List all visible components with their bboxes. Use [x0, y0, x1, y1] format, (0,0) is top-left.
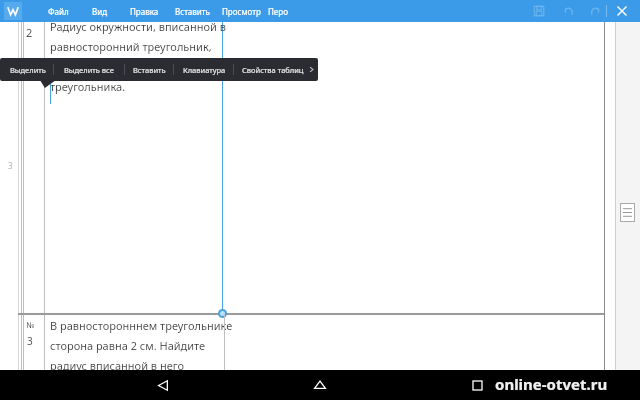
- button[interactable]: App menu: [4, 2, 22, 20]
- staticText: Вид: [92, 6, 108, 17]
- staticText: online-otvet.ru: [495, 374, 608, 394]
- button[interactable]: Выделить: [4, 58, 52, 81]
- staticText: Клавиатура: [183, 65, 226, 75]
- button[interactable]: Клавиатура: [176, 58, 232, 81]
- button[interactable]: Перо: [268, 0, 288, 22]
- button[interactable]: Back: [150, 372, 176, 398]
- staticText: радиус вписанной в него: [50, 358, 184, 373]
- button[interactable]: Undo: [562, 4, 576, 18]
- staticText: Просмотр: [222, 6, 261, 17]
- button[interactable]: Close: [614, 3, 630, 19]
- button[interactable]: Вставить: [126, 58, 172, 81]
- staticText: Свойства таблиц: [242, 65, 304, 75]
- button[interactable]: Выделить все: [55, 58, 123, 81]
- staticText: треугольника.: [50, 79, 126, 94]
- button[interactable]: Вид: [92, 0, 108, 22]
- staticText: Правка: [130, 6, 159, 17]
- staticText: равна 2 см. Найдите сторону: [50, 59, 205, 74]
- staticText: Перо: [268, 6, 288, 17]
- button[interactable]: Свойства таблиц: [237, 58, 309, 81]
- staticText: Радиус окружности, вписанной в: [50, 19, 226, 34]
- button[interactable]: Recents: [464, 372, 490, 398]
- button[interactable]: Правка: [130, 0, 159, 22]
- button[interactable]: More options: [304, 58, 318, 81]
- staticText: Файл: [48, 6, 69, 17]
- button[interactable]: Pages: [620, 203, 635, 222]
- staticText: 2: [26, 25, 33, 40]
- staticText: Вставить: [133, 65, 166, 75]
- button[interactable]: Redo: [588, 4, 602, 18]
- staticText: Выделить: [10, 65, 46, 75]
- button[interactable]: Вставить: [175, 0, 210, 22]
- button[interactable]: Home: [307, 372, 333, 398]
- button[interactable]: Файл: [48, 0, 69, 22]
- staticText: 3: [27, 334, 33, 348]
- button[interactable]: Просмотр: [222, 0, 261, 22]
- staticText: Выделить все: [64, 65, 114, 75]
- staticText: Вставить: [175, 6, 210, 17]
- staticText: №: [26, 319, 35, 330]
- staticText: 3: [8, 160, 13, 171]
- button[interactable]: Save: [532, 4, 546, 18]
- staticText: сторона равна 2 см. Найдите: [50, 338, 206, 353]
- staticText: В равносторонннем треугольнике: [50, 318, 233, 333]
- staticText: равносторонний треугольник,: [50, 39, 212, 54]
